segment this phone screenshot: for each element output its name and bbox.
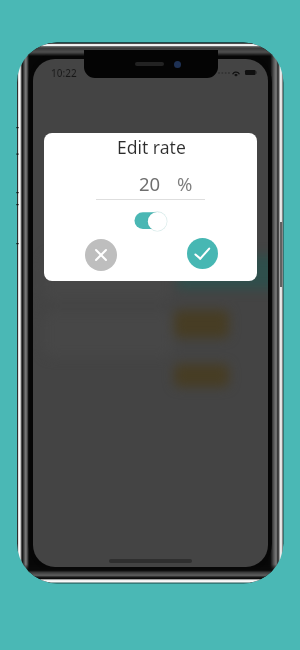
staticText: % (177, 171, 193, 196)
staticText: 10:22 (51, 66, 77, 80)
staticText: Edit rate (117, 135, 186, 159)
button[interactable]: Toggle rate (132, 209, 170, 232)
button[interactable]: Cancel (85, 239, 117, 271)
staticText: 20 (139, 171, 161, 196)
button[interactable]: Confirm (187, 238, 218, 269)
